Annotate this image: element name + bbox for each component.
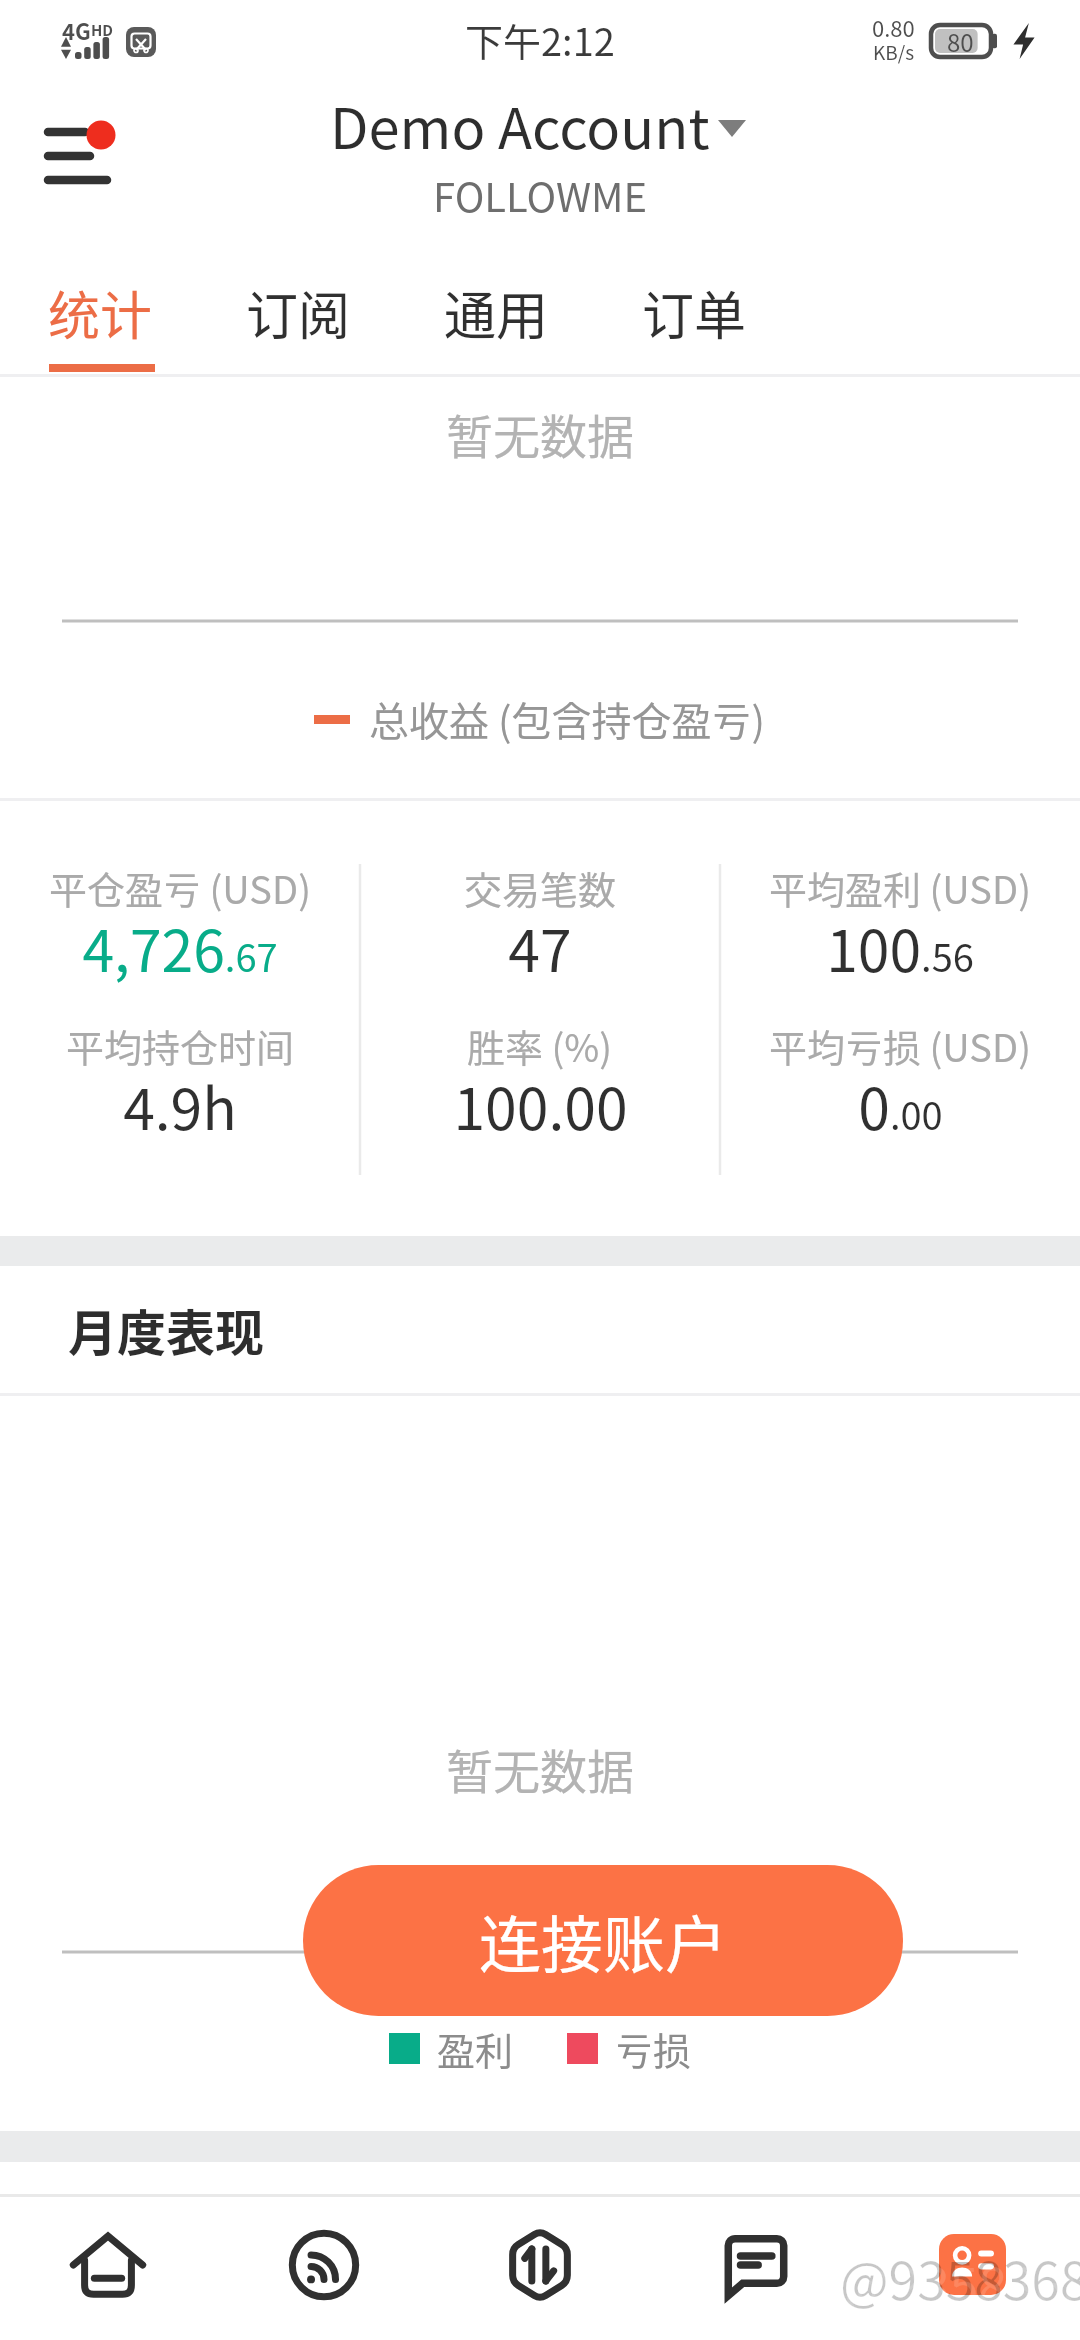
staticText: 100.00 bbox=[453, 1064, 628, 1147]
staticText: KB/s bbox=[873, 38, 915, 66]
button[interactable]: Messages bbox=[648, 2197, 864, 2340]
button[interactable]: 订阅 bbox=[218, 228, 388, 377]
button[interactable]: Profile bbox=[864, 2197, 1080, 2340]
button[interactable]: Trade bbox=[432, 2197, 648, 2340]
staticText: 4G bbox=[62, 14, 91, 46]
staticText: 平仓盈亏 (USD) bbox=[49, 860, 311, 915]
staticText: 47 bbox=[508, 906, 572, 989]
staticText: 4.9h bbox=[123, 1064, 237, 1147]
staticText: @9358368 bbox=[844, 2246, 1080, 2321]
staticText: 胜率 (%) bbox=[467, 1018, 613, 1073]
staticText: 交易笔数 bbox=[464, 860, 617, 915]
button[interactable]: 统计 bbox=[20, 228, 190, 377]
button[interactable]: Home bbox=[0, 2197, 216, 2340]
staticText: 平均盈利 (USD) bbox=[769, 860, 1031, 915]
staticText: 订阅 bbox=[246, 275, 351, 350]
staticText: 亏损 bbox=[615, 2021, 692, 2076]
staticText: 总收益 (包含持仓盈亏) bbox=[369, 690, 765, 748]
staticText: 平均持仓时间 bbox=[66, 1018, 295, 1073]
staticText: 订单 bbox=[642, 275, 747, 350]
staticText: 0.80 bbox=[872, 11, 915, 43]
button[interactable]: 订单 bbox=[614, 228, 784, 377]
staticText: 暂无数据 bbox=[446, 399, 634, 467]
staticText: 0.00 bbox=[858, 1064, 943, 1147]
button[interactable]: 通用 bbox=[416, 228, 586, 377]
staticText: FOLLOWME bbox=[433, 166, 648, 224]
staticText: 平均亏损 (USD) bbox=[769, 1018, 1031, 1073]
staticText: 盈利 bbox=[437, 2021, 514, 2076]
staticText: 通用 bbox=[444, 275, 549, 350]
button[interactable]: Feed bbox=[216, 2197, 432, 2340]
staticText: Demo Account bbox=[330, 84, 710, 165]
staticText: 100.56 bbox=[826, 906, 974, 989]
staticText: HD bbox=[91, 19, 114, 41]
button[interactable]: Menu bbox=[29, 128, 129, 198]
staticText: 统计 bbox=[48, 275, 153, 350]
staticText: 4,726.67 bbox=[82, 906, 278, 989]
staticText: 连接账户 bbox=[479, 1896, 728, 1986]
staticText: @9358368 bbox=[840, 2240, 1080, 2315]
staticText: 月度表现 bbox=[68, 1294, 265, 1365]
staticText: 80 bbox=[947, 24, 974, 59]
button[interactable]: 连接账户 bbox=[303, 1865, 903, 2016]
staticText: 暂无数据 bbox=[446, 1734, 634, 1802]
staticText: 下午2:12 bbox=[465, 12, 615, 67]
